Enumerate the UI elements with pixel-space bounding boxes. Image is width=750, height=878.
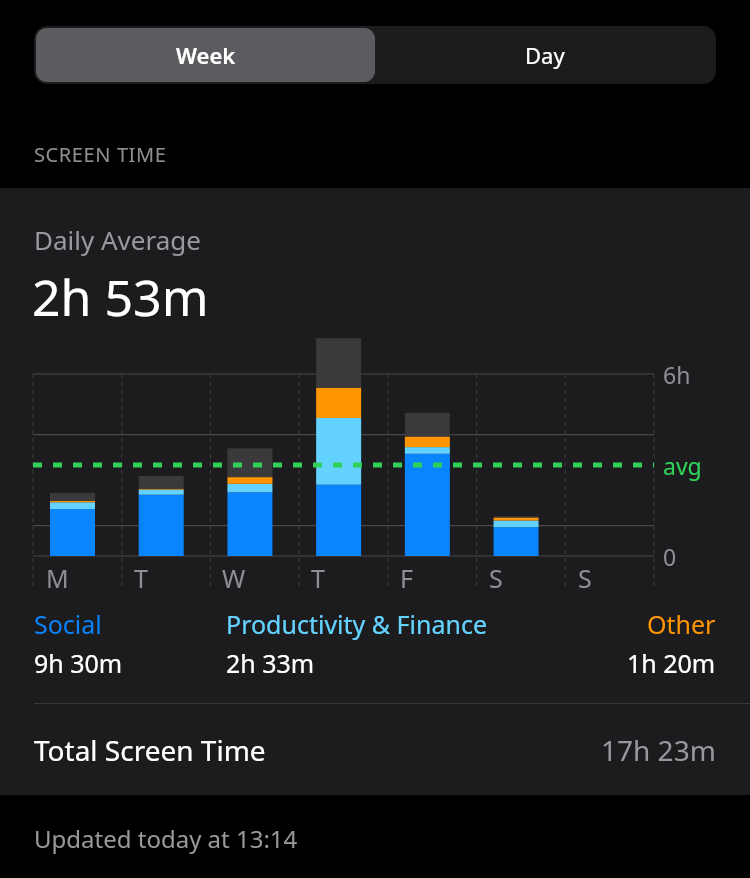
staticText: 9h 30m [34, 646, 123, 680]
button[interactable]: Day [375, 28, 714, 82]
staticText: 1h 20m [627, 646, 716, 680]
staticText: avg [663, 450, 702, 481]
staticText: Productivity & Finance [226, 607, 488, 641]
staticText: W [222, 561, 246, 595]
staticText: T [311, 561, 325, 595]
staticText: Day [525, 40, 565, 70]
staticText: Social [34, 607, 102, 641]
staticText: Daily Average [34, 222, 201, 257]
staticText: F [400, 561, 413, 595]
staticText: Other [647, 607, 716, 641]
staticText: 17h 23m [601, 731, 716, 769]
button[interactable]: Week [36, 28, 375, 82]
staticText: Week [176, 40, 236, 70]
staticText: 2h 53m [32, 263, 209, 331]
staticText: SCREEN TIME [34, 141, 167, 168]
staticText: S [578, 561, 592, 595]
staticText: Total Screen Time [34, 731, 266, 769]
button[interactable]: Total Screen Time [0, 704, 750, 795]
staticText: Updated today at 13:14 [34, 822, 298, 855]
staticText: S [489, 561, 503, 595]
staticText: 2h 33m [226, 646, 315, 680]
staticText: 6h [663, 359, 691, 390]
staticText: M [46, 561, 69, 595]
staticText: T [134, 561, 148, 595]
staticText: 0 [663, 541, 677, 572]
